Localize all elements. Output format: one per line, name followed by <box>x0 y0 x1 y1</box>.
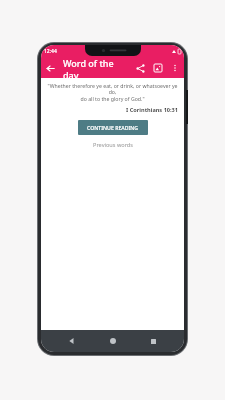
staticText: 12:44 <box>44 48 57 55</box>
staticText: I Corinthians 10:31 <box>46 106 178 114</box>
button[interactable]: Previous words <box>89 140 137 150</box>
button[interactable]: Recent apps <box>143 331 163 351</box>
button[interactable]: Back <box>62 331 82 351</box>
button[interactable]: Image <box>149 59 167 77</box>
button[interactable]: Back <box>41 59 59 77</box>
button[interactable]: Share <box>131 59 149 77</box>
button[interactable]: Home <box>103 331 123 351</box>
staticText: Previous words <box>93 141 133 149</box>
staticText: "Whether therefore ye eat, or drink, or … <box>46 82 179 103</box>
staticText: Word of the day <box>63 57 131 78</box>
staticText: CONTINUE READING <box>87 124 139 131</box>
button[interactable]: CONTINUE READING <box>78 120 148 135</box>
button[interactable]: More options <box>167 60 183 76</box>
